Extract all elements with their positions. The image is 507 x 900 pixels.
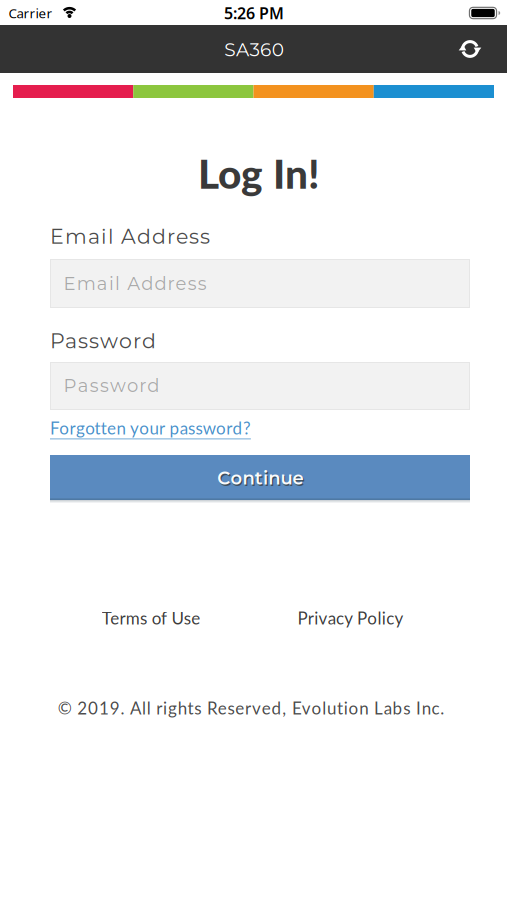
staticText: Continue (218, 469, 305, 490)
button[interactable]: Privacy Policy (200, 594, 500, 642)
staticText: SA360 (224, 38, 284, 61)
staticText: Terms of Use (102, 608, 200, 628)
staticText: Password (64, 374, 159, 396)
staticText: © 2019. All rights Reserved, Evolution L… (58, 698, 444, 718)
staticText: Continue (217, 467, 304, 489)
staticText: Log In! (198, 149, 320, 197)
button[interactable]: Terms of Use (1, 594, 301, 642)
button[interactable]: Continue (50, 455, 470, 500)
staticText: 5:26 PM (224, 2, 284, 24)
staticText: Forgotten your password? (50, 418, 251, 438)
staticText: Carrier (8, 4, 52, 22)
staticText: Email Address (64, 272, 207, 294)
staticText: Privacy Policy (298, 608, 403, 628)
staticText: Password (50, 328, 156, 353)
button[interactable]: Forgotten your password? (50, 408, 470, 448)
staticText: Email Address (50, 224, 210, 249)
button[interactable]: Refresh (452, 31, 488, 67)
